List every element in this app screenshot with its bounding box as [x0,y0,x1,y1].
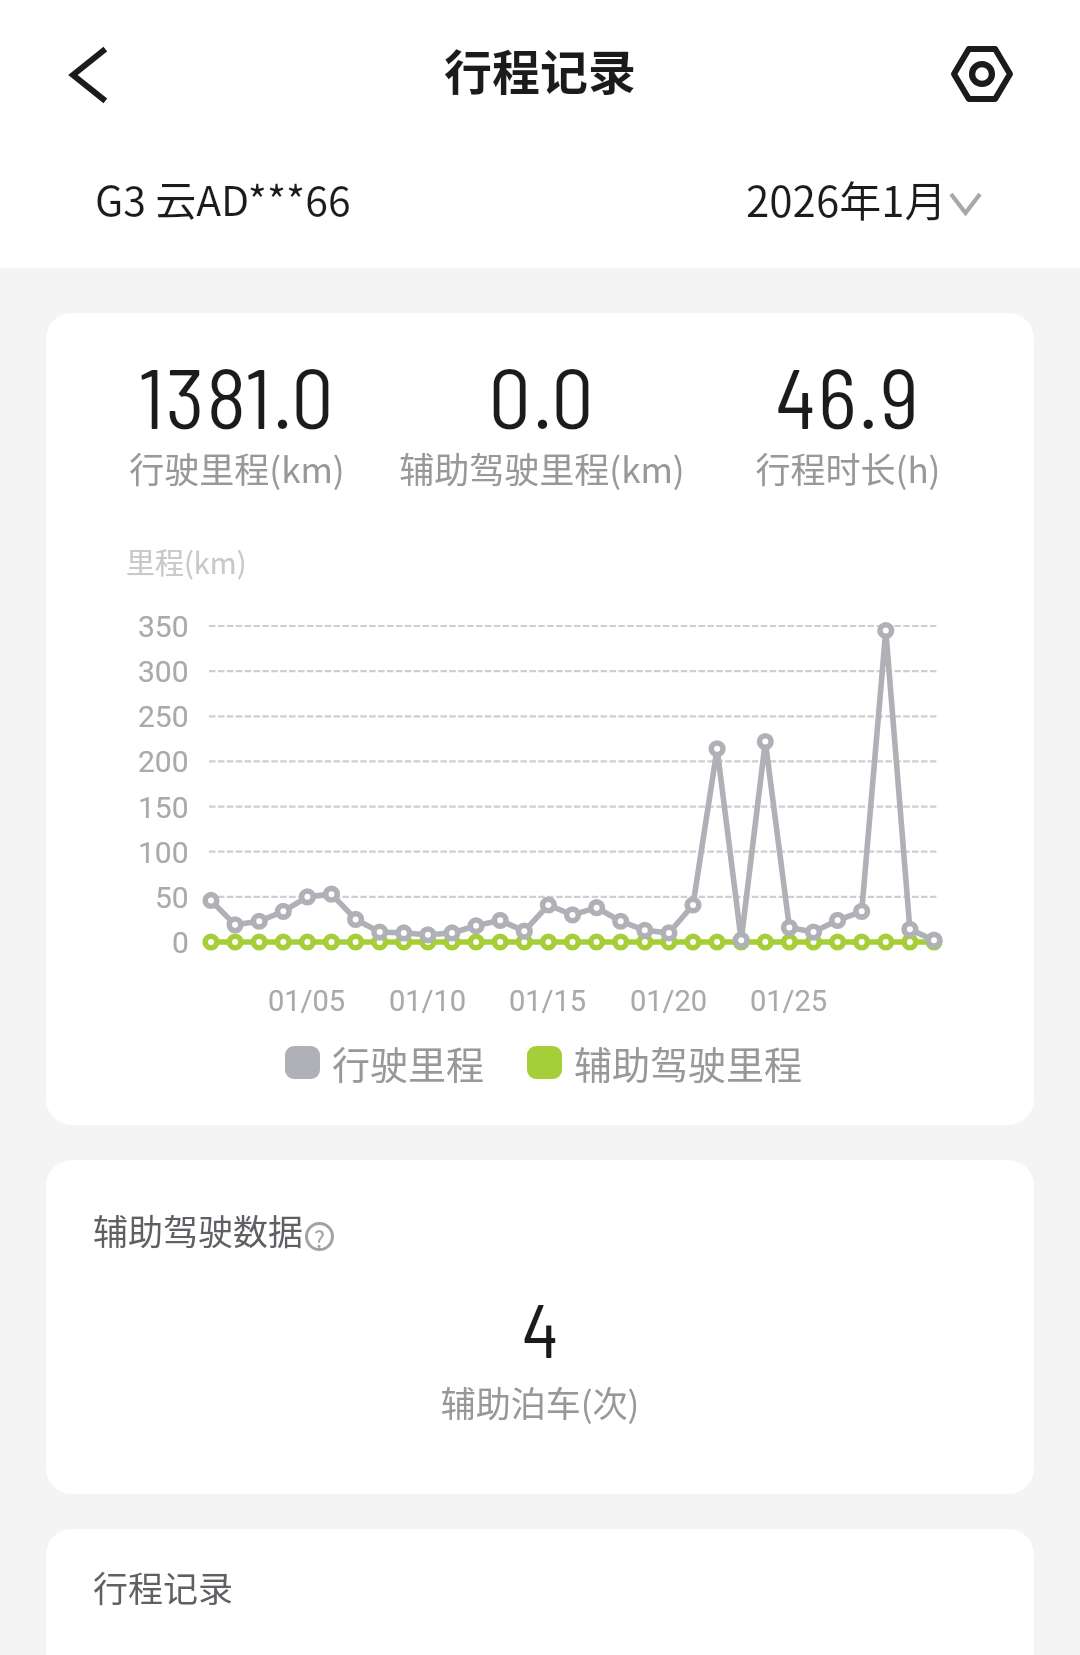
staticText: ? [314,1221,325,1250]
staticText: G3 云AD***66 [95,168,351,227]
staticText: 1381.0 [46,345,447,446]
staticText: 里程(km) [126,540,247,582]
staticText: 50 [155,880,189,915]
staticText: 行程记录 [93,1561,234,1612]
staticText: 100 [138,835,189,870]
staticText: 01/05 [268,984,346,1018]
staticText: 01/10 [389,984,467,1018]
staticText: 250 [138,699,189,734]
staticText: 01/15 [509,984,587,1018]
staticText: 0 [172,925,189,960]
staticText: 辅助驾驶数据 [93,1204,304,1255]
staticText: 行驶里程(km) [46,442,447,493]
staticText: 行程时长(h) [638,442,1034,493]
staticText: 350 [138,609,189,644]
staticText: 行程记录 [0,34,1080,104]
staticText: 300 [138,654,189,689]
staticText: 辅助驾驶里程(km) [332,442,752,493]
button[interactable]: 行程记录 [46,1529,1034,1655]
staticText: 150 [138,790,189,825]
staticText: 辅助泊车(次) [386,1376,694,1427]
staticText: 200 [138,744,189,779]
staticText: 4 [386,1282,694,1373]
staticText: 2026年1月 [746,168,947,229]
button[interactable]: Settings [940,32,1024,116]
button[interactable]: About assisted-driving data [305,1222,334,1251]
button[interactable]: Back [46,33,130,117]
staticText: 行驶里程 [332,1035,485,1090]
staticText: 辅助驾驶里程 [574,1035,803,1090]
staticText: 46.9 [638,345,1034,446]
staticText: 01/20 [630,984,708,1018]
staticText: 0.0 [332,345,752,446]
button[interactable]: 2026年1月 [746,168,981,229]
staticText: 01/25 [750,984,828,1018]
